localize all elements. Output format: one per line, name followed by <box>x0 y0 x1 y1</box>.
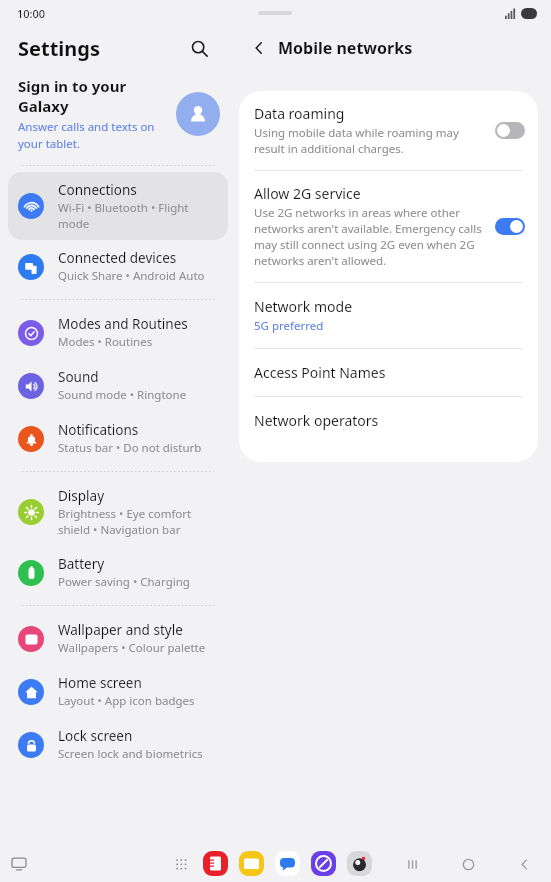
staticText: Network mode <box>254 297 353 316</box>
button[interactable]: Messages <box>275 851 300 876</box>
staticText: Sound <box>58 368 99 386</box>
staticText: Screen lock and biometrics <box>58 746 203 762</box>
button[interactable]: Sign in to your Galaxy <box>0 70 236 159</box>
staticText: Display <box>58 487 105 505</box>
staticText: Using mobile data while roaming may resu… <box>254 125 485 157</box>
button[interactable]: Sound <box>8 359 228 412</box>
staticText: Use 2G networks in areas where other net… <box>254 205 485 269</box>
staticText: Layout • App icon badges <box>58 693 195 709</box>
button[interactable]: Display <box>8 478 228 546</box>
button[interactable]: Network operators <box>239 397 538 444</box>
button[interactable]: Connections <box>8 172 228 240</box>
button[interactable]: Notes <box>203 851 228 876</box>
button[interactable]: Internet <box>311 851 336 876</box>
button[interactable]: Data roaming <box>239 91 538 170</box>
staticText: Quick Share • Android Auto <box>58 268 205 284</box>
button[interactable]: Home screen <box>8 665 228 718</box>
staticText: Sign in to your Galaxy <box>18 76 168 116</box>
button[interactable]: Allow 2G service on <box>495 218 525 235</box>
staticText: Network operators <box>254 411 379 430</box>
button[interactable]: Recent apps panel <box>6 851 32 877</box>
button[interactable]: Home <box>455 851 481 877</box>
button[interactable]: Lock screen <box>8 718 228 771</box>
staticText: Wi-Fi • Bluetooth • Flight mode <box>58 200 218 231</box>
staticText: Mobile networks <box>278 37 413 59</box>
staticText: Wallpapers • Colour palette <box>58 640 206 656</box>
button[interactable]: Search <box>184 33 214 63</box>
staticText: Lock screen <box>58 727 133 745</box>
staticText: Home screen <box>58 674 142 692</box>
staticText: Modes • Routines <box>58 334 153 350</box>
button[interactable]: Allow 2G service <box>239 171 538 282</box>
staticText: 5G preferred <box>254 318 324 334</box>
staticText: Modes and Routines <box>58 315 188 333</box>
button[interactable]: Back <box>244 33 274 63</box>
staticText: Battery <box>58 555 105 573</box>
staticText: Brightness • Eye comfort shield • Naviga… <box>58 506 218 537</box>
staticText: Notifications <box>58 421 139 439</box>
staticText: Power saving • Charging <box>58 574 190 590</box>
staticText: Settings <box>18 35 100 62</box>
button[interactable]: Network mode <box>239 283 538 348</box>
staticText: Access Point Names <box>254 363 386 382</box>
staticText: Answer calls and texts on your tablet. <box>18 119 168 151</box>
button[interactable]: Modes and Routines <box>8 306 228 359</box>
button[interactable]: Battery <box>8 546 228 599</box>
button[interactable]: Recent apps <box>399 851 425 877</box>
staticText: Data roaming <box>254 104 345 123</box>
staticText: Wallpaper and style <box>58 621 183 639</box>
button[interactable]: Wallpaper and style <box>8 612 228 665</box>
staticText: Connections <box>58 181 137 199</box>
button[interactable]: Camera <box>347 851 372 876</box>
staticText: Status bar • Do not disturb <box>58 440 202 456</box>
button[interactable]: Back <box>511 851 537 877</box>
staticText: Connected devices <box>58 249 177 267</box>
button[interactable]: Apps <box>170 853 192 875</box>
button[interactable]: Notifications <box>8 412 228 465</box>
button[interactable]: Connected devices <box>8 240 228 293</box>
button[interactable]: Data roaming off <box>495 122 525 139</box>
staticText: 10:00 <box>17 6 46 21</box>
staticText: Allow 2G service <box>254 184 361 203</box>
staticText: Sound mode • Ringtone <box>58 387 187 403</box>
button[interactable]: My Files <box>239 851 264 876</box>
button[interactable]: Access Point Names <box>239 349 538 396</box>
